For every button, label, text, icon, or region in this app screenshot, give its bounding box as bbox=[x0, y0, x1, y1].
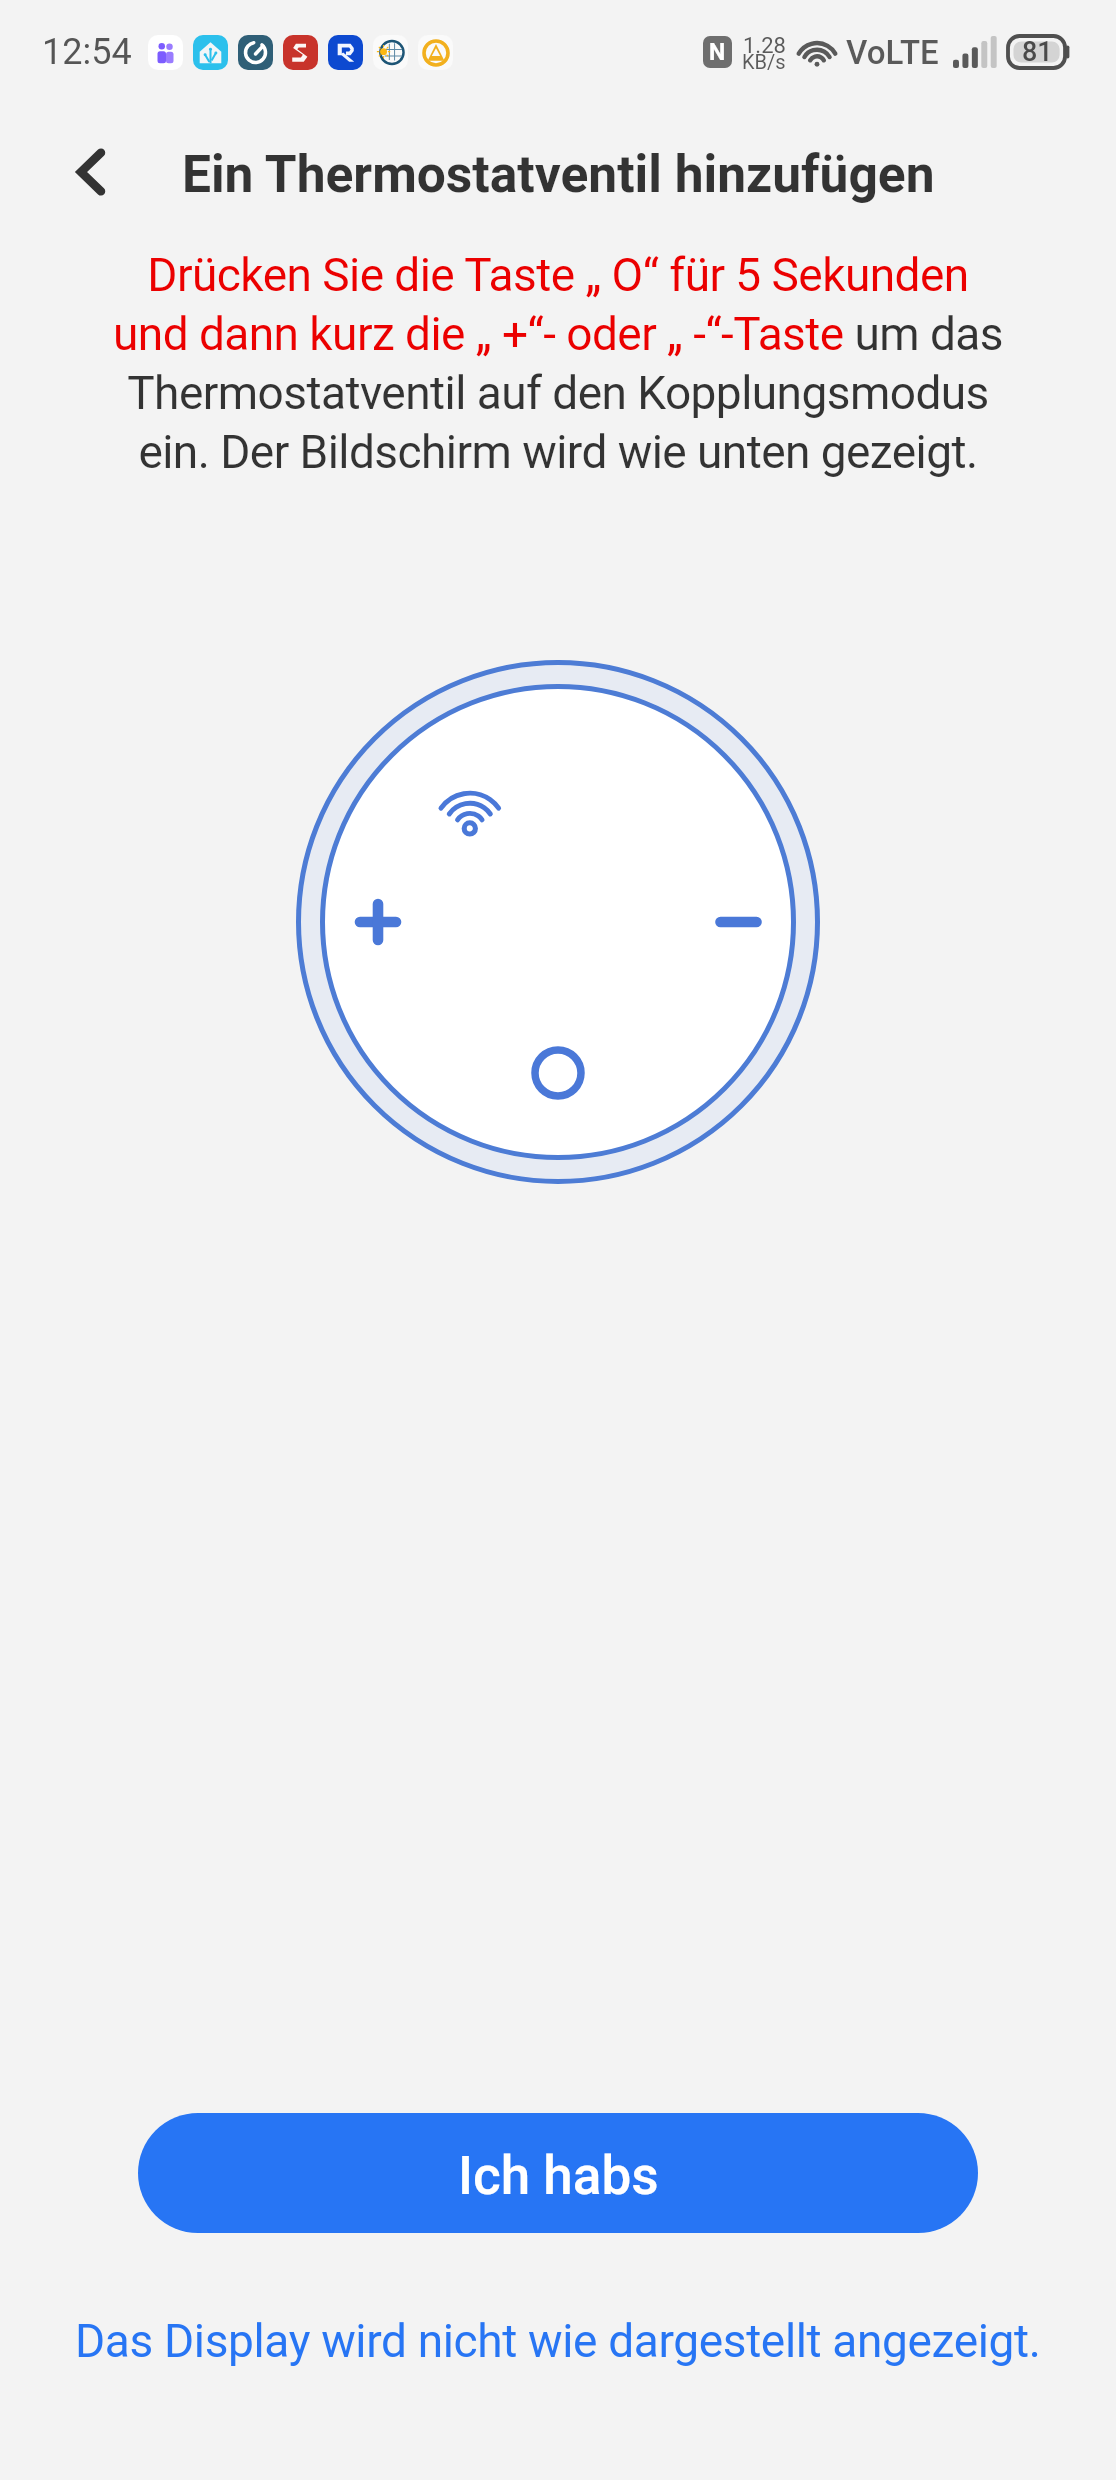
staticText: 12:54 bbox=[42, 31, 132, 73]
staticText: Ein Thermostatventil hinzufügen bbox=[182, 144, 935, 204]
staticText: VoLTE bbox=[846, 33, 939, 72]
button[interactable]: Das Display wird nicht wie dargestellt a… bbox=[51, 2302, 1065, 2380]
staticText: Drücken Sie die Taste „ O“ für 5 Sekunde… bbox=[108, 248, 1008, 479]
staticText: KB/s bbox=[742, 50, 786, 73]
button[interactable]: Ich habs bbox=[138, 2113, 978, 2233]
staticText: Ich habs bbox=[458, 2145, 659, 2207]
button[interactable]: Back bbox=[62, 146, 118, 202]
staticText: 1.28 bbox=[743, 33, 786, 59]
staticText: N bbox=[709, 39, 726, 66]
staticText: Das Display wird nicht wie dargestellt a… bbox=[75, 2314, 1041, 2368]
staticText: 81 bbox=[1022, 36, 1053, 68]
